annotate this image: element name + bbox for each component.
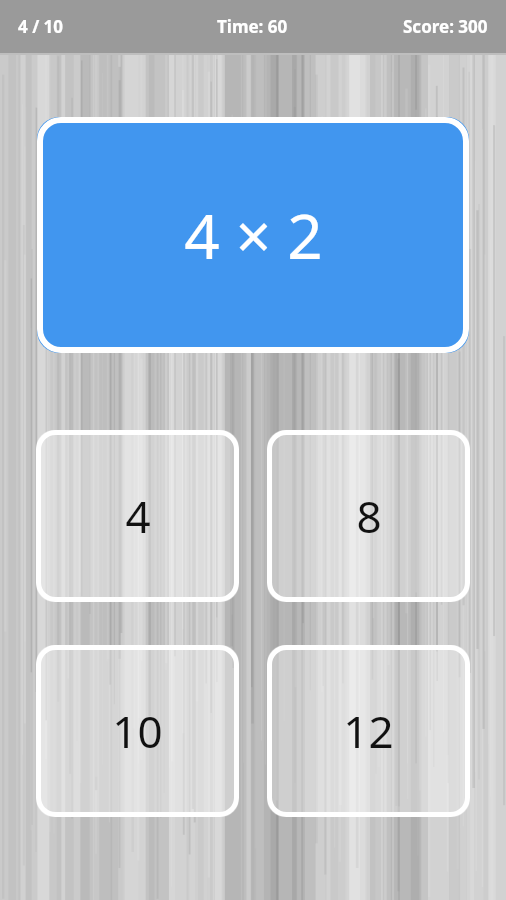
button[interactable]: 4	[36, 430, 239, 602]
button[interactable]: 8	[267, 430, 470, 602]
staticText: 4 / 10	[18, 15, 64, 38]
staticText: 8	[356, 486, 382, 546]
button[interactable]: 10	[36, 645, 239, 817]
staticText: 4 × 2	[184, 193, 323, 277]
staticText: Score: 300	[403, 15, 488, 38]
button[interactable]: 4 × 2	[37, 117, 469, 353]
staticText: 4	[125, 486, 151, 546]
button[interactable]: 12	[267, 645, 470, 817]
staticText: 10	[112, 701, 163, 761]
staticText: Time: 60	[217, 15, 288, 38]
staticText: 12	[343, 701, 394, 761]
